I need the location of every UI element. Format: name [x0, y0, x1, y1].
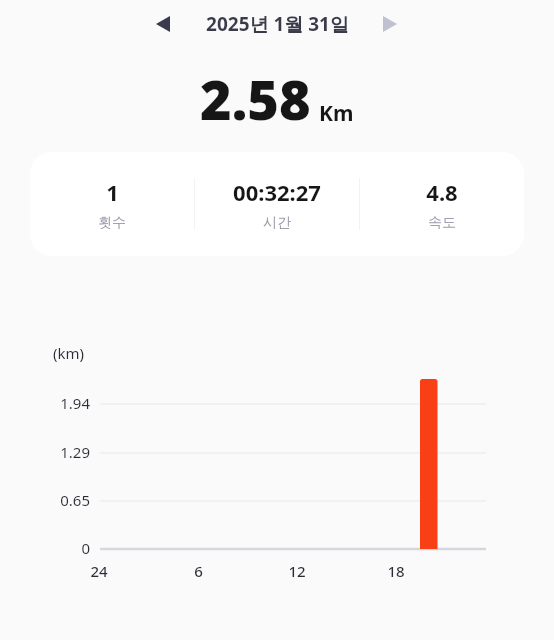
- staticText: 12: [288, 561, 306, 581]
- button[interactable]: 4.8: [360, 177, 524, 232]
- button[interactable]: 1: [30, 152, 524, 256]
- staticText: 18: [387, 561, 405, 581]
- staticText: 1: [106, 177, 119, 207]
- staticText: 2.58: [200, 62, 311, 136]
- staticText: 24: [90, 561, 108, 581]
- staticText: 횟수: [98, 214, 126, 232]
- staticText: 0.65: [60, 490, 90, 510]
- staticText: Km: [319, 99, 354, 128]
- staticText: 1.94: [60, 393, 90, 413]
- staticText: 2025년 1월 31일: [206, 11, 349, 37]
- staticText: 시간: [263, 214, 291, 232]
- staticText: 1.29: [60, 442, 90, 462]
- button[interactable]: Previous day: [145, 7, 181, 41]
- staticText: 0: [81, 538, 90, 558]
- staticText: 4.8: [426, 177, 458, 207]
- button[interactable]: Next day: [372, 7, 408, 41]
- staticText: 00:32:27: [233, 177, 321, 207]
- button[interactable]: 1: [30, 177, 194, 232]
- staticText: 6: [194, 561, 203, 581]
- button[interactable]: 00:32:27: [195, 177, 359, 232]
- staticText: 속도: [428, 214, 456, 232]
- staticText: (km): [53, 343, 85, 363]
